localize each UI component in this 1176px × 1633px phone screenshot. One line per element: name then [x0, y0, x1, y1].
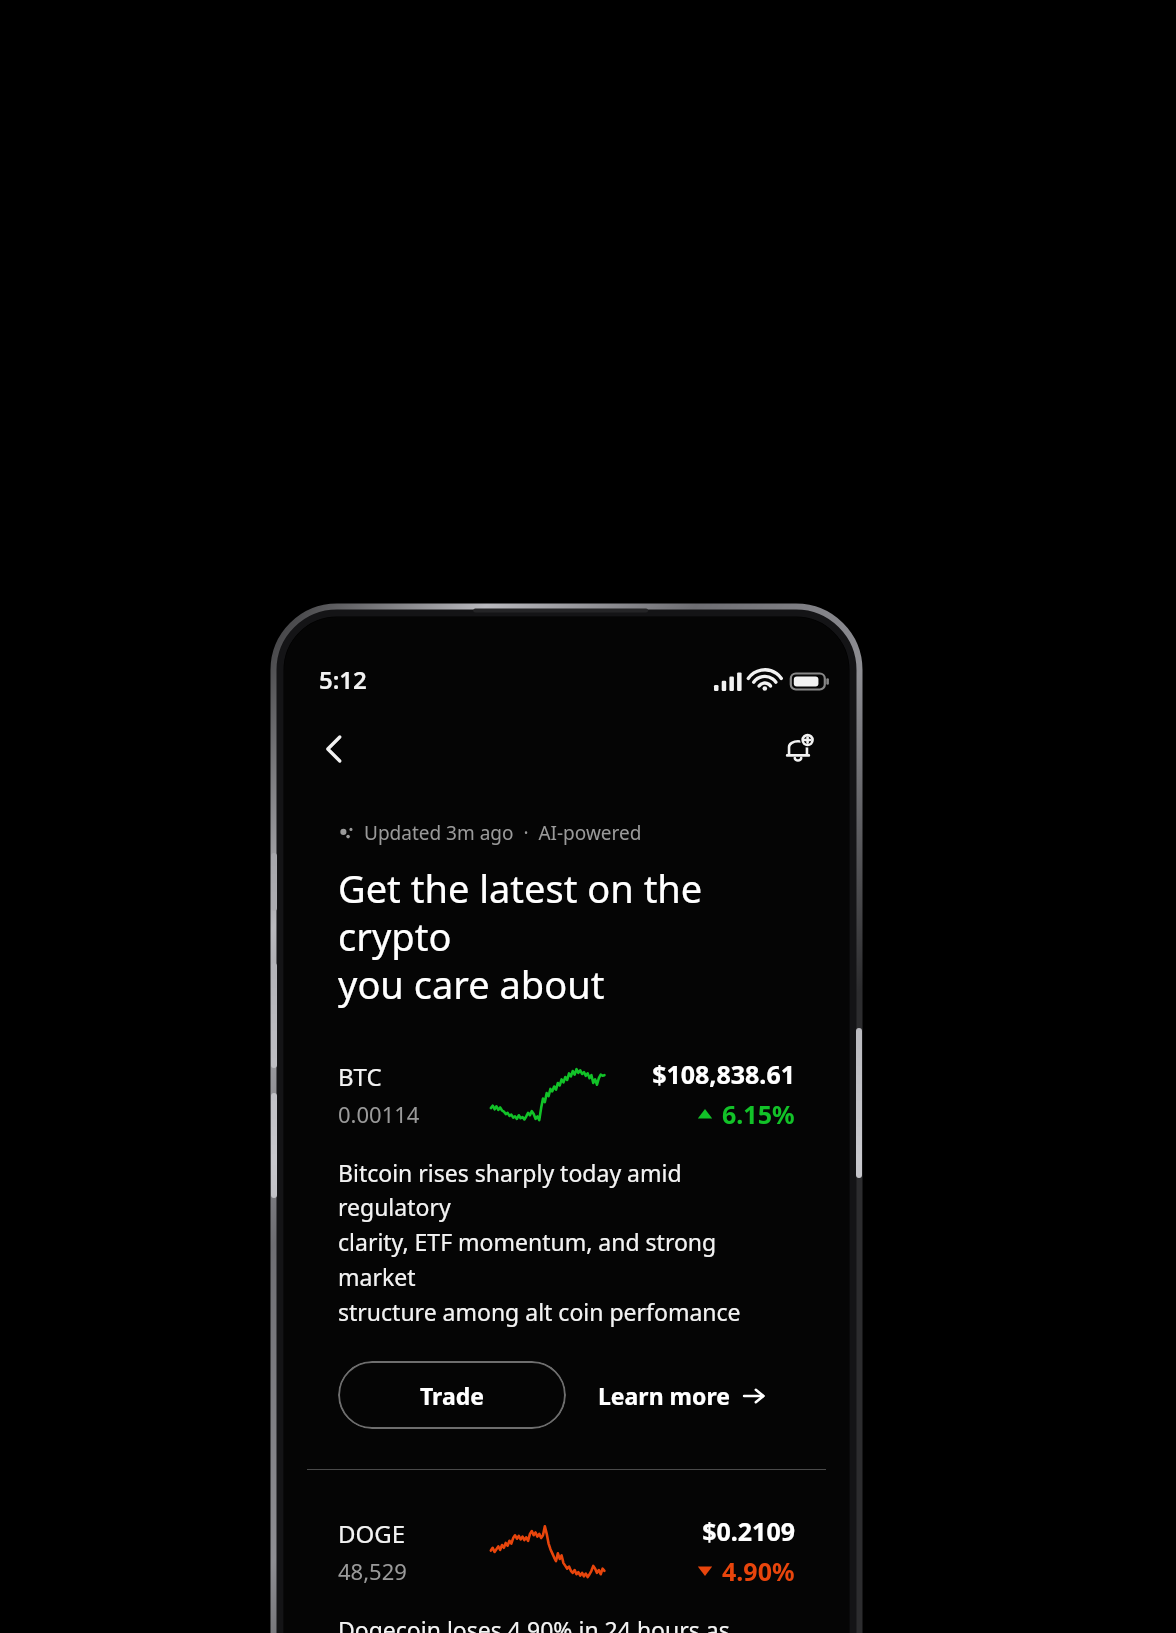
button[interactable]: Trade	[338, 1361, 566, 1429]
staticText: 0.00114	[338, 1099, 420, 1129]
staticText: 48,529	[338, 1556, 407, 1586]
staticText: DOGE	[338, 1517, 406, 1550]
staticText: Trade	[420, 1380, 484, 1411]
staticText: Bitcoin rises sharply today amid regulat…	[338, 1157, 795, 1328]
staticText: Learn more	[598, 1380, 730, 1411]
button[interactable]: Learn more	[588, 1368, 775, 1423]
button[interactable]: Add alert	[770, 721, 826, 777]
staticText: Get the latest on the crypto you care ab…	[338, 862, 795, 1010]
staticText: Updated 3m ago · AI-powered	[364, 820, 642, 846]
button[interactable]: BTC	[285, 1057, 848, 1131]
staticText: $108,838.61	[652, 1057, 795, 1091]
staticText: Dogecoin loses 4.90% in 24 hours as resi…	[338, 1614, 781, 1633]
staticText: BTC	[338, 1060, 382, 1093]
staticText: $0.2109	[702, 1514, 795, 1548]
staticText: 6.15%	[722, 1097, 795, 1131]
button[interactable]: Back	[307, 721, 363, 777]
button[interactable]: DOGE	[285, 1514, 848, 1588]
staticText: 5:12	[319, 663, 367, 696]
staticText: 4.90%	[722, 1554, 795, 1588]
